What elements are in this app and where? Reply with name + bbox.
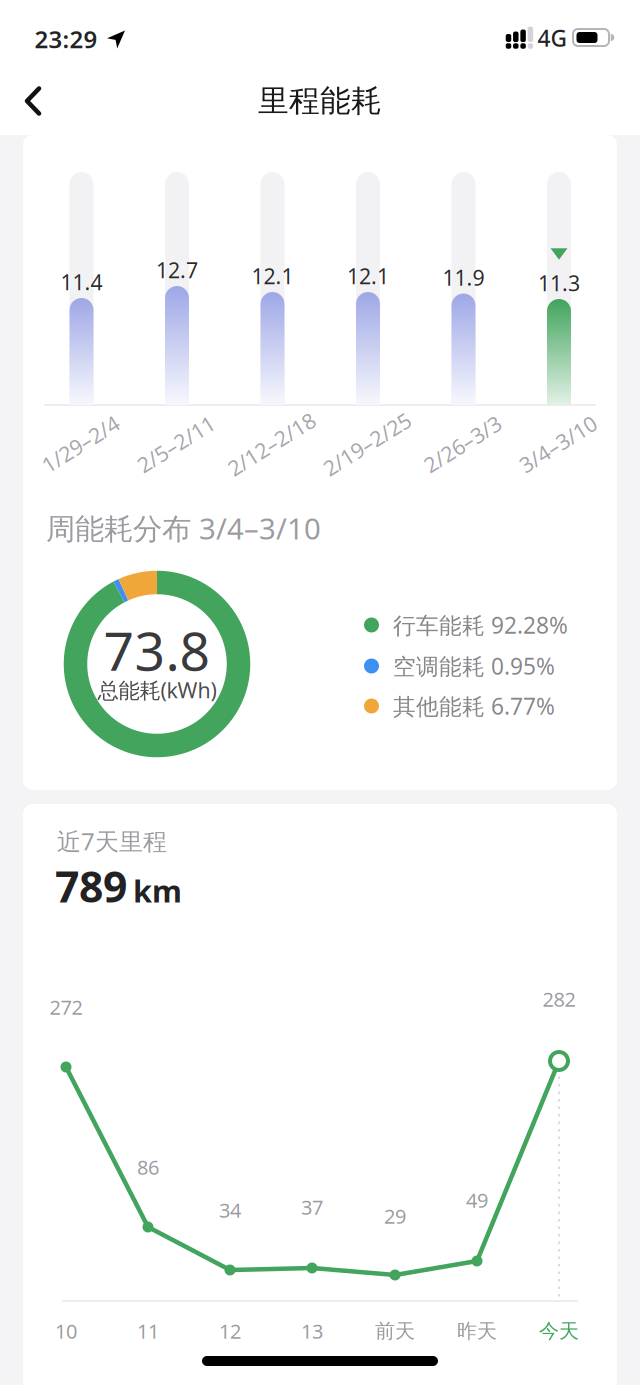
staticText: 2/12–2/18 — [222, 430, 321, 458]
staticText: 4G — [537, 23, 566, 53]
staticText: 34 — [219, 1197, 241, 1223]
staticText: 总能耗(kWh) — [97, 676, 216, 704]
staticText: 282 — [542, 986, 575, 1012]
staticText: 12.1 — [251, 262, 293, 290]
staticText: 前天 — [375, 1319, 415, 1343]
staticText: 3/4–3/10 — [514, 430, 601, 458]
staticText: 12 — [219, 1318, 241, 1344]
staticText: 行车能耗 92.28% — [393, 610, 568, 640]
staticText: 其他能耗 6.77% — [393, 691, 555, 721]
staticText: 2/19–2/25 — [317, 430, 416, 458]
staticText: 1/29–2/4 — [37, 430, 124, 458]
button[interactable]: Back — [13, 80, 67, 121]
staticText: 23:29 — [34, 23, 97, 55]
staticText: 10 — [55, 1318, 77, 1344]
staticText: 12.7 — [156, 256, 198, 284]
staticText: 今天 — [539, 1319, 579, 1343]
staticText: 86 — [137, 1154, 159, 1180]
staticText: 12.1 — [347, 262, 389, 290]
staticText: 29 — [384, 1203, 406, 1229]
staticText: 近7天里程 — [57, 825, 167, 857]
staticText: 272 — [49, 994, 82, 1020]
staticText: 2/5–2/11 — [132, 430, 219, 458]
staticText: 2/26–3/3 — [419, 430, 506, 458]
staticText: 周能耗分布 3/4–3/10 — [46, 508, 321, 547]
staticText: 73.8 — [103, 615, 210, 685]
staticText: 789 — [55, 858, 127, 914]
staticText: 11.3 — [538, 269, 580, 297]
staticText: 空调能耗 0.95% — [393, 651, 555, 681]
staticText: 11.4 — [60, 268, 102, 296]
staticText: 11 — [137, 1318, 159, 1344]
staticText: 37 — [301, 1194, 323, 1220]
staticText: 昨天 — [457, 1319, 497, 1343]
staticText: km — [133, 870, 182, 911]
staticText: 13 — [301, 1318, 323, 1344]
staticText: 49 — [466, 1187, 488, 1213]
staticText: 11.9 — [442, 263, 484, 292]
staticText: 里程能耗 — [258, 82, 382, 120]
